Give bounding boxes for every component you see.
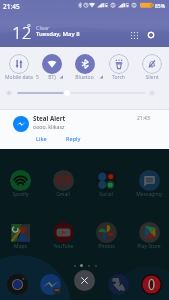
- staticText: Photos: [98, 243, 115, 250]
- button[interactable]: Messaging: [128, 170, 169, 198]
- staticText: Clear: [36, 24, 50, 31]
- button[interactable]: Silent: [135, 54, 168, 80]
- button[interactable]: Settings: [143, 27, 159, 43]
- button[interactable]: Bluetoo: [68, 54, 101, 80]
- staticText: Tuesday, May 8: [36, 30, 80, 38]
- staticText: YouTube: [53, 243, 74, 250]
- staticText: °: [27, 21, 31, 33]
- button[interactable]: Messenger: [40, 274, 61, 295]
- staticText: Torch: [112, 74, 125, 81]
- button[interactable]: Play Store: [128, 222, 169, 250]
- button[interactable]: Reply: [63, 133, 84, 144]
- staticText: oooo, klikasz: [33, 123, 65, 130]
- staticText: Reply: [66, 135, 81, 142]
- staticText: Messaging: [136, 191, 162, 198]
- button[interactable]: Torch: [102, 54, 135, 80]
- button[interactable]: Spotify: [0, 170, 41, 198]
- staticText: Like: [36, 135, 47, 142]
- staticText: Play Store: [137, 243, 161, 250]
- button[interactable]: Social: [85, 170, 127, 198]
- staticText: Bluetoo: [75, 74, 94, 81]
- staticText: Steal Alert: [33, 114, 66, 122]
- button[interactable]: Photos: [85, 222, 127, 250]
- button[interactable]: Phone: [108, 274, 129, 295]
- staticText: 12: [12, 21, 32, 44]
- button[interactable]: Close: [74, 270, 95, 291]
- staticText: Spotify: [12, 191, 29, 198]
- button[interactable]: Opera: [141, 274, 162, 295]
- staticText: Gmail: [56, 191, 70, 198]
- button[interactable]: YouTube: [42, 222, 84, 250]
- button[interactable]: Gmail: [42, 170, 84, 198]
- button[interactable]: BT): [35, 54, 68, 80]
- button[interactable]: Brightness: [0, 86, 169, 100]
- staticText: 21:43: [137, 115, 150, 122]
- staticText: Mobile data: [5, 74, 33, 81]
- button[interactable]: Maps: [0, 222, 41, 250]
- staticText: 5: [36, 74, 39, 81]
- button[interactable]: Steal Alert: [0, 110, 169, 149]
- staticText: 85%: [155, 3, 165, 10]
- button[interactable]: Mobile data: [2, 54, 35, 80]
- staticText: Maps: [14, 243, 27, 250]
- staticText: Silent: [145, 74, 159, 81]
- button[interactable]: Like: [33, 133, 50, 144]
- staticText: Social: [99, 191, 113, 198]
- staticText: BT): [48, 74, 56, 81]
- staticText: 21:45: [3, 2, 20, 11]
- button[interactable]: Camera: [7, 274, 28, 295]
- button[interactable]: Apps: [126, 27, 142, 43]
